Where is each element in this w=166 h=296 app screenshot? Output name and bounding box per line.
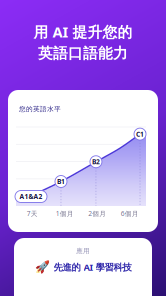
staticText: B1	[57, 177, 65, 186]
staticText: 7天	[27, 209, 38, 218]
staticText: 1個月	[56, 209, 74, 218]
staticText: C1	[136, 130, 144, 139]
staticText: 您的英語水平	[19, 105, 61, 113]
staticText: 先進的 AI 學習科技	[53, 261, 131, 273]
staticText: A1&A2	[19, 192, 42, 201]
staticText: 用 AI 提升您的	[33, 22, 132, 41]
button[interactable]: 🚀	[14, 255, 152, 274]
staticText: 6個月	[121, 209, 139, 218]
staticText: B2	[92, 157, 100, 166]
staticText: 英語口語能力	[38, 44, 128, 62]
staticText: 應用	[76, 247, 90, 255]
staticText: 2個月	[88, 209, 106, 218]
staticText: 🚀	[34, 260, 49, 274]
